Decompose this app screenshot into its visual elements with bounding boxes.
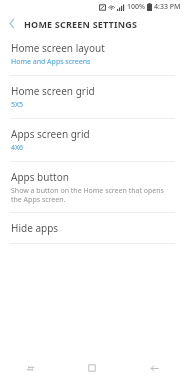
staticText: 4X6 [11, 143, 24, 153]
button[interactable]: Home [61, 356, 123, 380]
button[interactable]: Back [123, 356, 185, 380]
staticText: Hide apps [11, 221, 59, 235]
button[interactable]: Home screen layout [0, 33, 185, 75]
staticText: 5X5 [11, 100, 24, 110]
staticText: Apps screen grid [11, 127, 90, 141]
button[interactable]: Home screen grid [0, 76, 185, 118]
button[interactable]: Recents [0, 356, 61, 380]
button[interactable]: Hide apps [0, 213, 185, 243]
button[interactable]: Apps button [0, 162, 185, 212]
button[interactable]: Apps screen grid [0, 119, 185, 161]
staticText: Home and Apps screens [11, 57, 91, 67]
staticText: 4:33 PM [154, 2, 181, 12]
staticText: Home screen grid [11, 84, 95, 98]
staticText: Home screen layout [11, 41, 105, 55]
staticText: 100% [127, 2, 145, 12]
button[interactable]: Back [0, 14, 24, 33]
staticText: Show a button on the Home screen that op… [11, 186, 174, 204]
staticText: HOME SCREEN SETTINGS [24, 18, 138, 30]
staticText: Apps button [11, 170, 69, 184]
